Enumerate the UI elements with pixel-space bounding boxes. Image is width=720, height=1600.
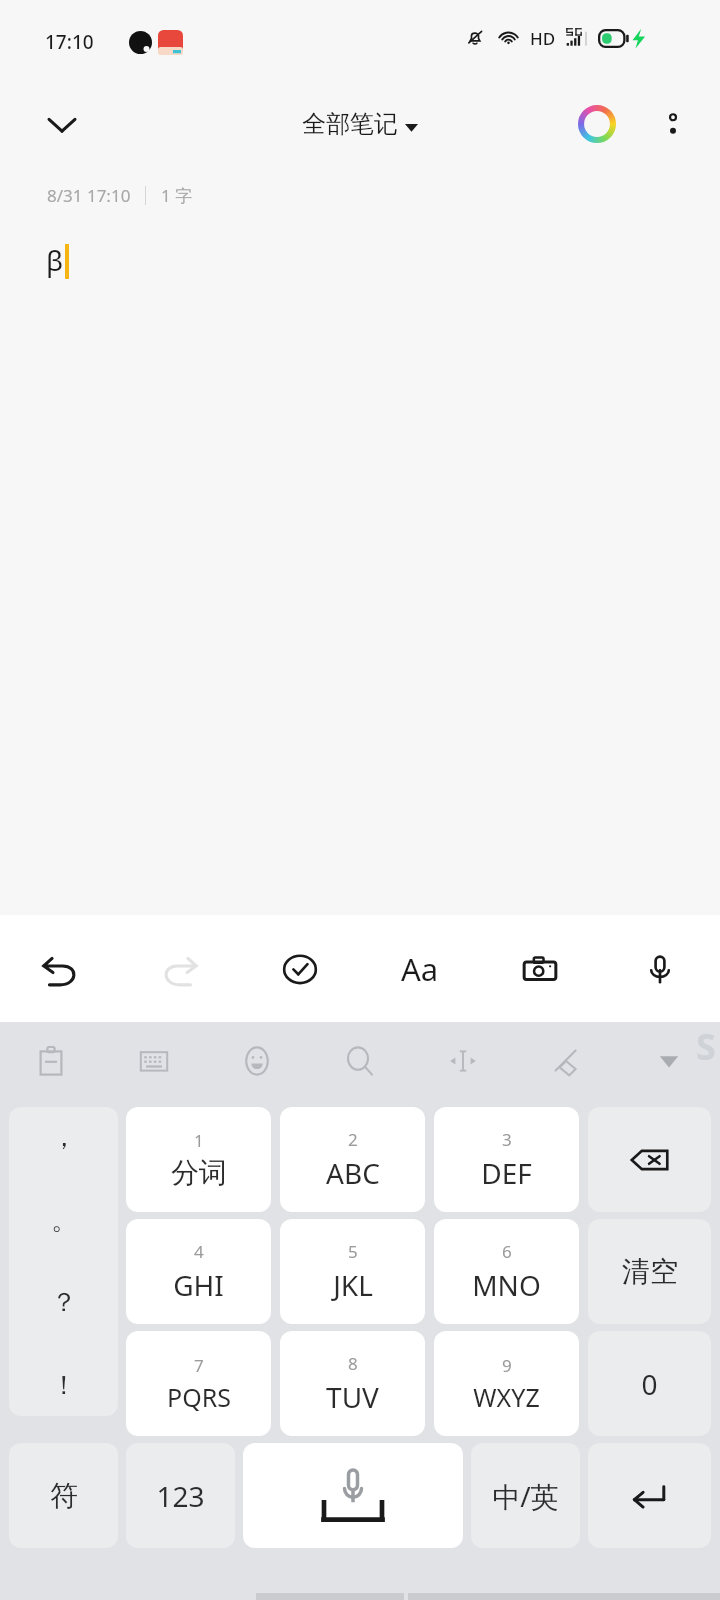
button[interactable]: 分词 <box>126 1107 271 1212</box>
staticText: TUV <box>326 1378 379 1416</box>
button[interactable]: Theme color <box>566 93 628 155</box>
button[interactable]: 清空 <box>588 1219 711 1324</box>
button[interactable]: 符 <box>9 1443 118 1548</box>
staticText: 3 <box>502 1128 512 1151</box>
button[interactable]: Search <box>308 1022 411 1100</box>
button[interactable]: Enter <box>588 1443 711 1548</box>
button[interactable]: Camera <box>480 915 600 1022</box>
staticText: 符 <box>50 1478 78 1513</box>
staticText: 8 <box>348 1352 358 1375</box>
button[interactable]: DEF <box>434 1107 579 1212</box>
staticText: S <box>696 1022 716 1071</box>
staticText: ？ <box>51 1286 77 1319</box>
staticText: PQRS <box>167 1380 231 1414</box>
button[interactable]: Punctuation <box>9 1107 118 1416</box>
button[interactable]: Redo <box>120 915 240 1022</box>
staticText: β <box>46 241 64 279</box>
staticText: GHI <box>173 1266 224 1304</box>
button[interactable]: Collapse <box>22 84 102 164</box>
staticText: ！ <box>51 1369 77 1402</box>
staticText: 清空 <box>622 1254 678 1289</box>
staticText: 4 <box>194 1240 204 1263</box>
staticText: 5 <box>348 1240 358 1263</box>
button[interactable]: Backspace <box>588 1107 711 1212</box>
button[interactable]: JKL <box>280 1219 425 1324</box>
staticText: 123 <box>156 1477 205 1515</box>
staticText: Aa <box>401 948 439 990</box>
button[interactable]: 中/英 <box>471 1443 580 1548</box>
staticText: 6 <box>502 1240 512 1263</box>
staticText: HD <box>530 27 556 50</box>
staticText: 7 <box>194 1354 204 1377</box>
button[interactable]: GHI <box>126 1219 271 1324</box>
button[interactable]: 123 <box>126 1443 235 1548</box>
button[interactable]: 全部笔记 <box>302 109 418 139</box>
button[interactable]: Checklist <box>240 915 360 1022</box>
staticText: ABC <box>326 1154 380 1192</box>
button[interactable]: MNO <box>434 1219 579 1324</box>
staticText: WXYZ <box>473 1380 540 1414</box>
button[interactable]: More options <box>642 93 704 155</box>
staticText: 1 字 <box>161 184 193 207</box>
button[interactable]: TUV <box>280 1331 425 1436</box>
staticText: 。 <box>51 1204 77 1237</box>
staticText: 8/31 17:10 <box>47 184 131 207</box>
staticText: 1 <box>194 1129 204 1152</box>
button[interactable]: Clipboard <box>0 1022 102 1100</box>
button[interactable]: 0 <box>588 1331 711 1436</box>
button[interactable]: WXYZ <box>434 1331 579 1436</box>
button[interactable]: Move cursor <box>411 1022 514 1100</box>
button[interactable]: PQRS <box>126 1331 271 1436</box>
staticText: 9 <box>502 1354 512 1377</box>
button[interactable]: Aa <box>360 915 480 1022</box>
staticText: 分词 <box>171 1155 227 1190</box>
button[interactable]: ABC <box>280 1107 425 1212</box>
button[interactable]: Emoji <box>205 1022 308 1100</box>
staticText: MNO <box>472 1266 541 1304</box>
button[interactable]: Space <box>243 1443 463 1548</box>
staticText: JKL <box>333 1266 373 1304</box>
staticText: DEF <box>481 1154 532 1192</box>
staticText: 17:10 <box>45 29 94 55</box>
button[interactable]: Undo <box>0 915 120 1022</box>
staticText: ， <box>51 1121 77 1154</box>
button[interactable]: Hide keyboard <box>617 1022 720 1100</box>
staticText: 0 <box>641 1365 658 1403</box>
button[interactable]: Theme <box>514 1022 617 1100</box>
staticText: 中/英 <box>492 1477 559 1515</box>
button[interactable]: Keyboard layout <box>102 1022 205 1100</box>
button[interactable]: Voice input <box>600 915 720 1022</box>
staticText: 全部笔记 <box>302 109 398 139</box>
staticText: 2 <box>348 1128 358 1151</box>
